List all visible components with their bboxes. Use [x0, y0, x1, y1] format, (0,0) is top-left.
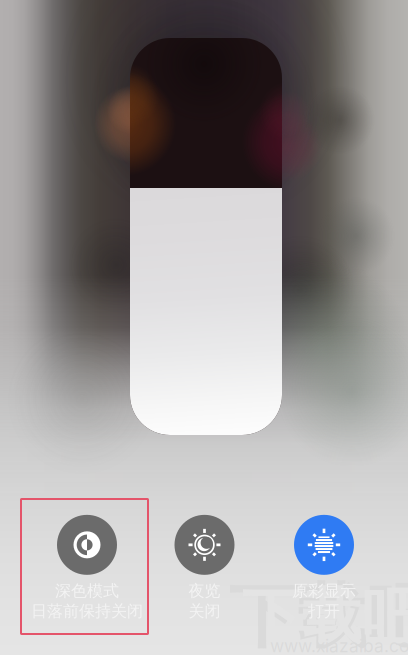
button[interactable]: Night Shift [139, 515, 269, 621]
staticText: 下载吧 [228, 573, 408, 655]
staticText: 关闭 [188, 601, 220, 621]
staticText: 夜览 [188, 581, 220, 601]
staticText: 日落前保持关闭 [31, 601, 143, 621]
staticText: 下载吧 [242, 579, 408, 655]
staticText: www.xiazaiba.com [270, 635, 408, 655]
button[interactable]: True Tone [259, 515, 389, 621]
staticText: 原彩显示 [292, 581, 356, 601]
staticText: 打开 [308, 601, 340, 621]
staticText: 深色模式 [55, 581, 119, 601]
button[interactable]: Dark Mode [22, 515, 152, 621]
button[interactable]: Brightness [130, 38, 282, 435]
